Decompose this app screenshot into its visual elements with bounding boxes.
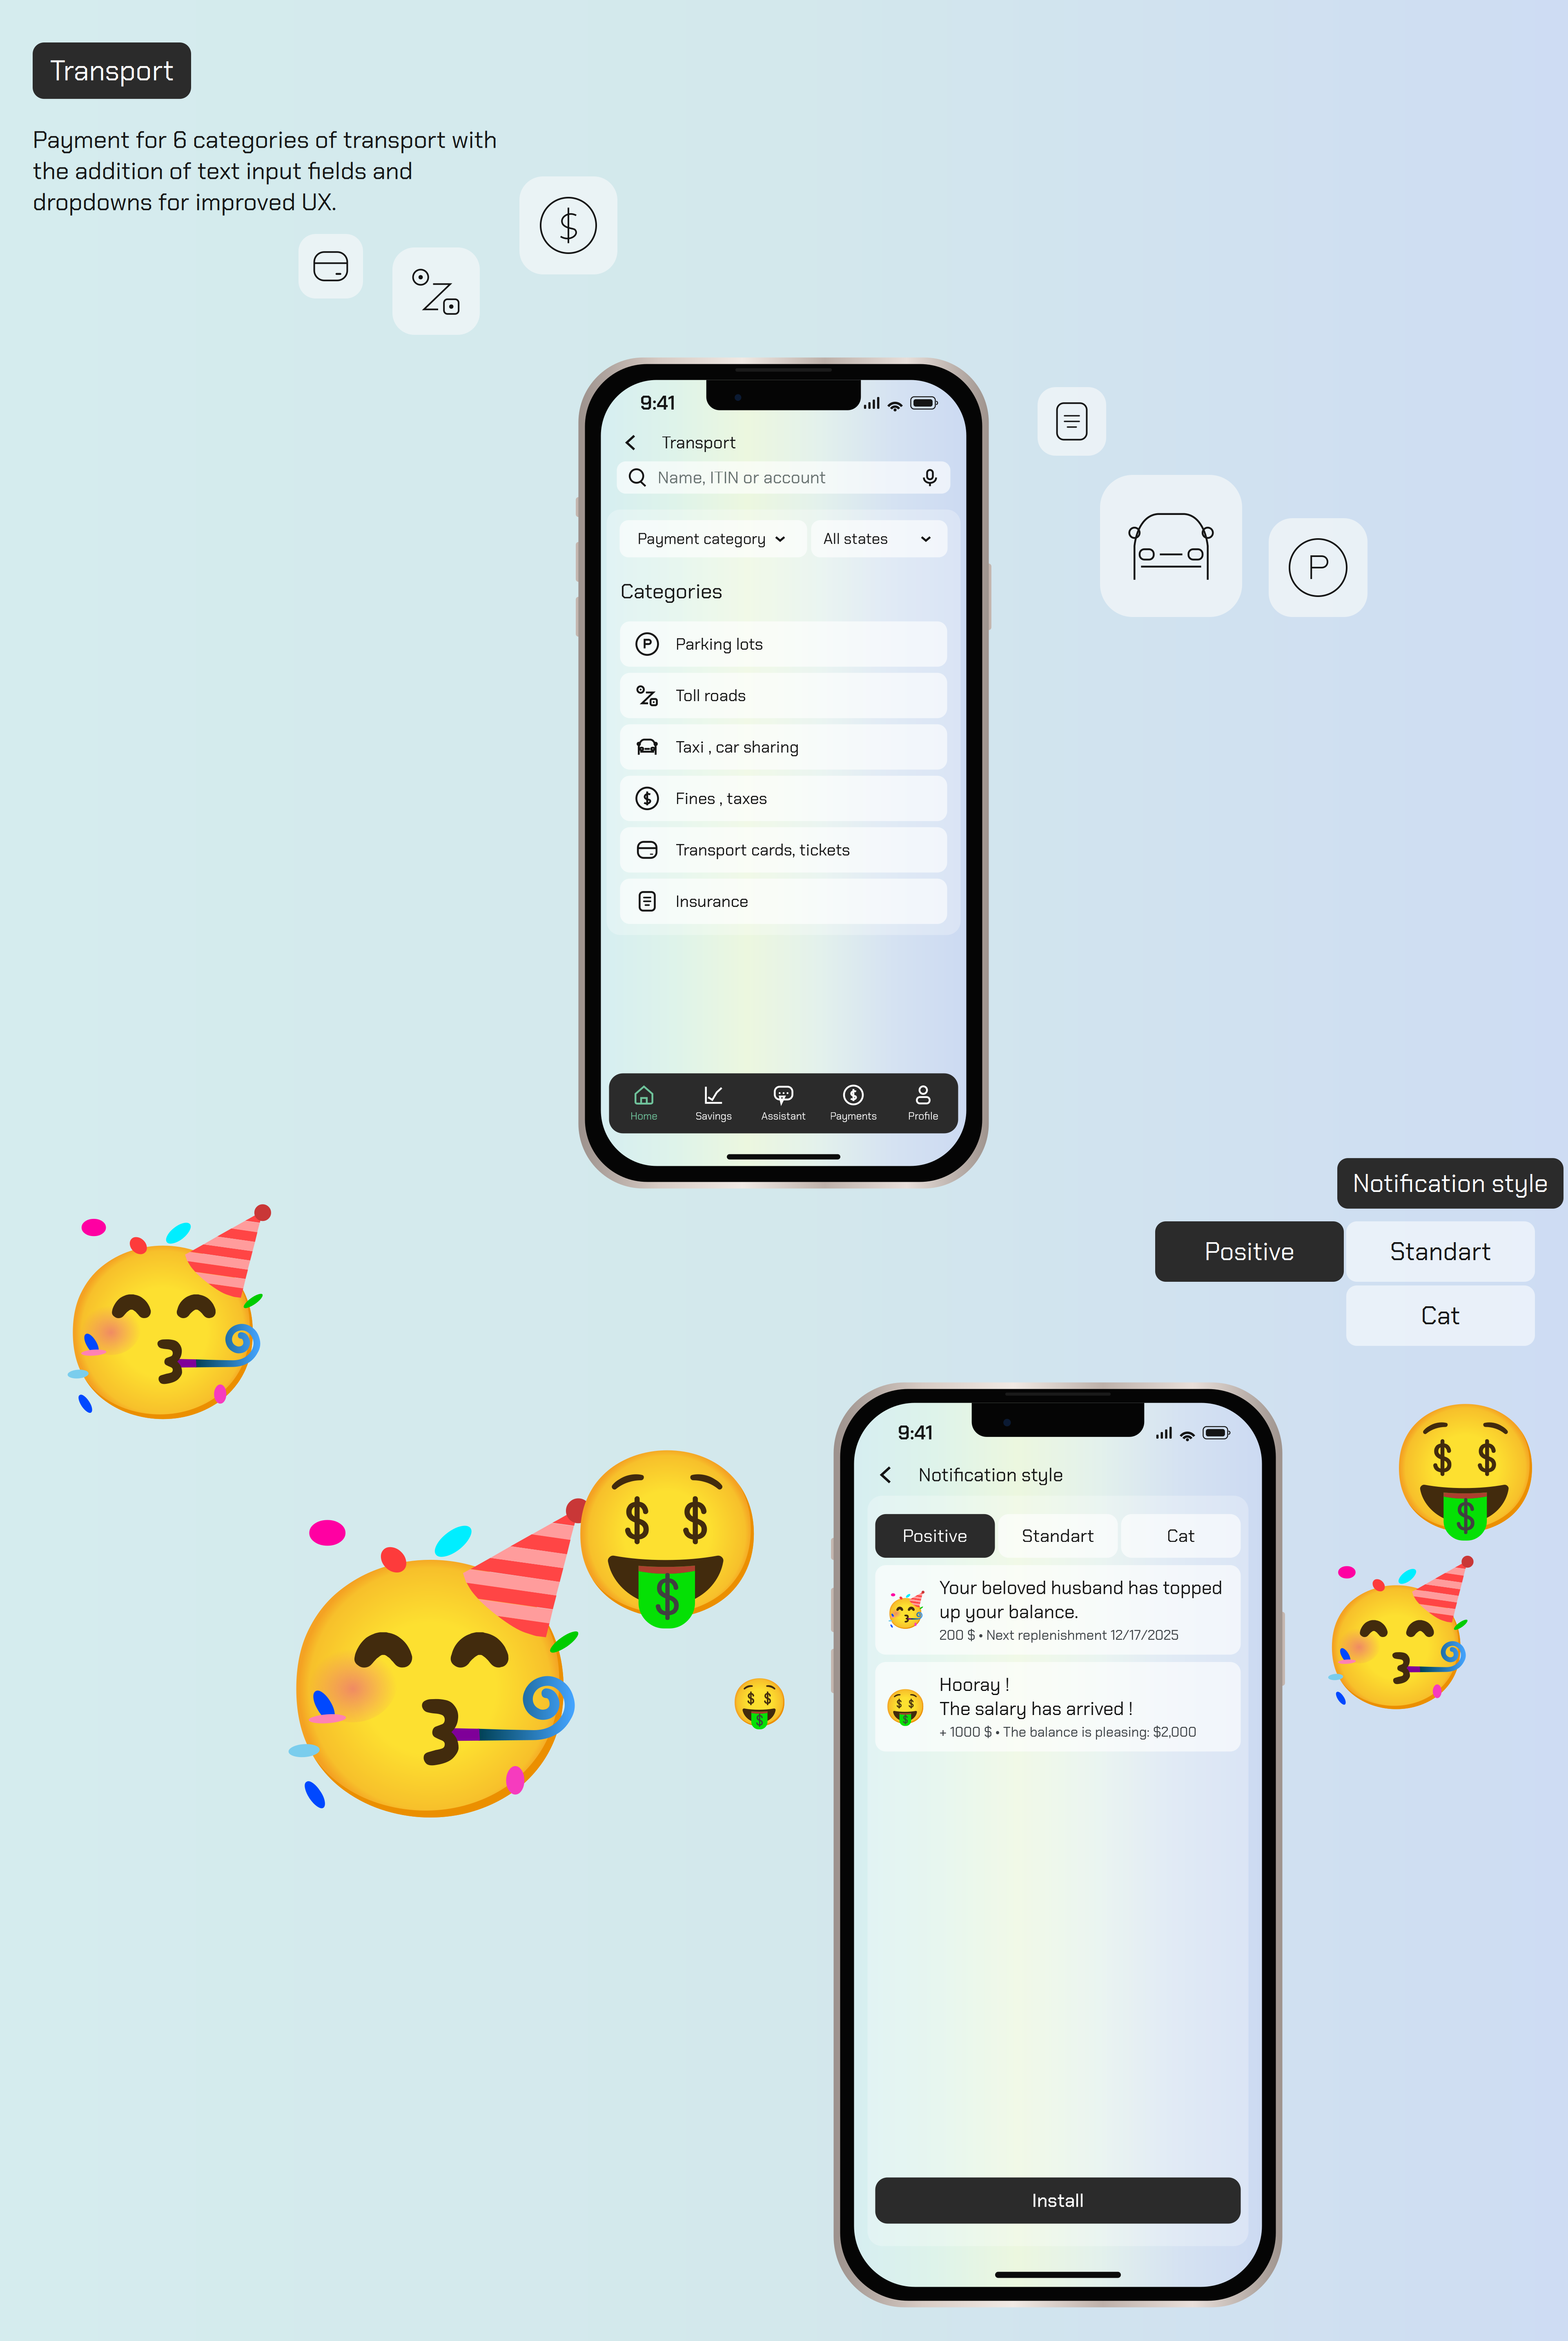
- button[interactable]: Cat: [1121, 1514, 1241, 1558]
- staticText: 🥳: [1312, 1556, 1481, 1711]
- button[interactable]: Back: [620, 431, 641, 454]
- staticText: Payment category: [638, 529, 766, 549]
- button[interactable]: Name, ITIN or account: [617, 461, 950, 494]
- button[interactable]: Payments: [819, 1086, 888, 1123]
- staticText: 🥳: [884, 1591, 926, 1629]
- button[interactable]: Assistant: [749, 1086, 819, 1123]
- button[interactable]: Payment category: [620, 520, 807, 557]
- button[interactable]: All states: [811, 520, 948, 557]
- staticText: Transport cards, tickets: [676, 839, 850, 860]
- staticText: Cat: [1421, 1299, 1460, 1332]
- button[interactable]: Insurance: [620, 879, 947, 924]
- staticText: Home: [630, 1109, 657, 1123]
- button[interactable]: Back: [874, 1463, 897, 1487]
- button[interactable]: Positive: [875, 1514, 995, 1558]
- staticText: Name, ITIN or account: [658, 467, 826, 488]
- staticText: 🤑: [1388, 1398, 1544, 1541]
- staticText: Positive: [903, 1524, 968, 1548]
- staticText: Insurance: [676, 891, 748, 912]
- staticText: Taxi , car sharing: [676, 736, 799, 758]
- staticText: 9:41: [898, 1420, 933, 1445]
- staticText: Hooray ! The salary has arrived !: [939, 1673, 1133, 1721]
- staticText: Toll roads: [676, 685, 746, 706]
- staticText: Notification style: [919, 1463, 1063, 1487]
- button[interactable]: Profile: [888, 1086, 958, 1123]
- staticText: 9:41: [640, 390, 675, 416]
- staticText: + 1000 $ • The balance is pleasing: $2,0…: [939, 1723, 1197, 1741]
- button[interactable]: Taxi , car sharing: [620, 724, 947, 770]
- staticText: Savings: [696, 1109, 732, 1123]
- staticText: Positive: [1205, 1235, 1294, 1268]
- staticText: Categories: [620, 578, 723, 605]
- staticText: 🥳: [255, 1498, 607, 1822]
- staticText: Your beloved husband has topped up your …: [939, 1576, 1222, 1624]
- button[interactable]: 🥳: [875, 1565, 1241, 1655]
- button[interactable]: Install: [875, 2177, 1241, 2224]
- staticText: Parking lots: [676, 633, 763, 655]
- staticText: Fines , taxes: [676, 788, 767, 809]
- staticText: 200 $ • Next replenishment 12/17/2025: [939, 1626, 1179, 1644]
- staticText: Cat: [1167, 1524, 1195, 1548]
- staticText: Install: [1032, 2188, 1084, 2213]
- button[interactable]: Standart: [998, 1514, 1118, 1558]
- staticText: All states: [823, 529, 888, 549]
- staticText: Standart: [1390, 1235, 1491, 1268]
- staticText: Transport: [662, 432, 736, 454]
- staticText: Standart: [1022, 1524, 1094, 1548]
- staticText: Assistant: [761, 1109, 806, 1123]
- staticText: Payments: [830, 1109, 877, 1123]
- button[interactable]: 🤑: [875, 1662, 1241, 1751]
- button[interactable]: Fines , taxes: [620, 776, 947, 821]
- button[interactable]: Home: [609, 1086, 679, 1123]
- staticText: Profile: [908, 1109, 938, 1123]
- button[interactable]: Parking lots: [620, 621, 947, 667]
- staticText: 🤑: [884, 1687, 926, 1726]
- button[interactable]: Savings: [679, 1086, 749, 1123]
- staticText: 🤑: [566, 1442, 769, 1629]
- staticText: Transport: [50, 52, 174, 89]
- staticText: 🥳: [45, 1204, 282, 1422]
- staticText: Payment for 6 categories of transport wi…: [33, 124, 497, 218]
- button[interactable]: Transport cards, tickets: [620, 827, 947, 873]
- staticText: 🤑: [730, 1676, 789, 1730]
- staticText: Notification style: [1353, 1167, 1548, 1200]
- button[interactable]: Toll roads: [620, 673, 947, 718]
